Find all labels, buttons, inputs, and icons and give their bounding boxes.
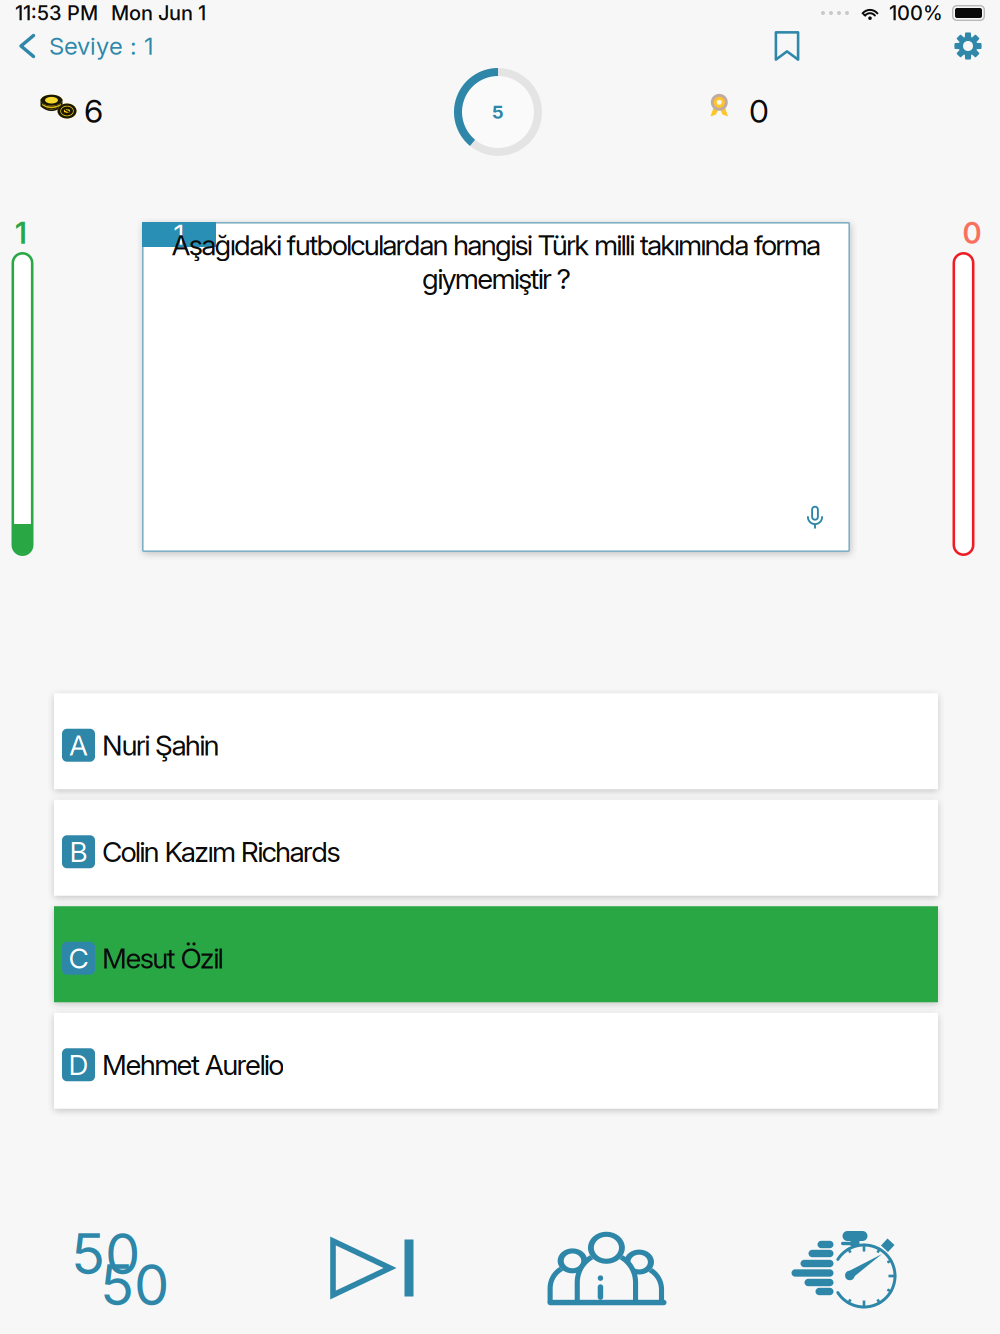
staticText: Colin Kazım Richards (102, 835, 341, 869)
staticText: B (69, 835, 87, 869)
staticText: 100% (889, 1, 943, 25)
button[interactable]: C (54, 906, 938, 1002)
staticText: A (69, 728, 88, 762)
staticText: C (68, 941, 88, 975)
staticText: $ (64, 105, 70, 117)
staticText: 50 (100, 1251, 169, 1319)
staticText: 1 (173, 218, 184, 251)
staticText: D (68, 1048, 88, 1082)
button[interactable]: Seviye : 1 (18, 24, 208, 68)
staticText: Seviye : 1 (49, 31, 154, 60)
staticText: 1 (15, 215, 27, 251)
button[interactable]: Extra time (757, 1213, 937, 1323)
button[interactable]: D (54, 1013, 938, 1109)
button[interactable]: A (54, 693, 938, 789)
staticText: Mehmet Aurelio (102, 1048, 284, 1082)
staticText: 50 (71, 1220, 140, 1288)
button[interactable]: Bookmark (760, 24, 814, 68)
staticText: Mon Jun 1 (111, 1, 206, 25)
staticText: 5 (492, 101, 504, 123)
staticText: Aşağıdaki futbolculardan hangisi Türk mi… (171, 228, 821, 296)
staticText: Mesut Özil (102, 941, 224, 975)
staticText: Nuri Şahin (102, 728, 220, 762)
staticText: 11:53 PM (15, 1, 98, 25)
button[interactable]: Settings (941, 24, 995, 68)
staticText: 6 (84, 92, 103, 130)
button[interactable]: Fifty fifty (31, 1213, 211, 1323)
staticText: 0 (962, 215, 981, 251)
staticText: 0 (749, 92, 769, 130)
button[interactable]: Ask the audience (517, 1213, 697, 1323)
button[interactable]: B (54, 800, 938, 896)
button[interactable]: Skip question (283, 1213, 463, 1323)
